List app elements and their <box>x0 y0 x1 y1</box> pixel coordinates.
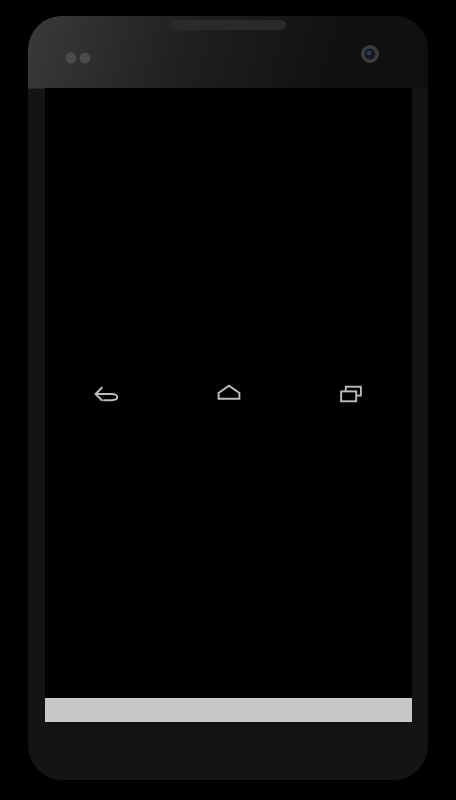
button[interactable]: Recent apps <box>290 371 412 416</box>
button[interactable]: Back <box>45 371 168 416</box>
button[interactable]: Home <box>168 371 290 416</box>
